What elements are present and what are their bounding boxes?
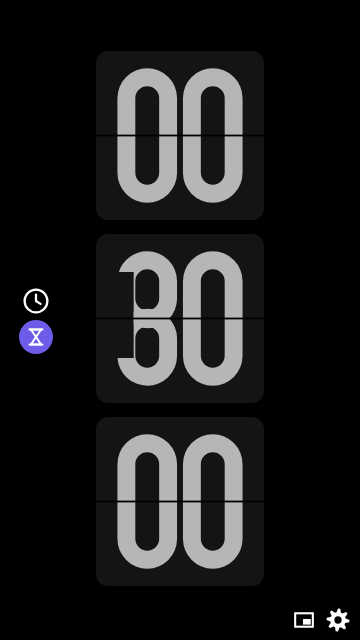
button[interactable]: Seconds 00 — [96, 417, 264, 586]
button[interactable]: Settings — [325, 607, 351, 633]
button[interactable]: Picture in picture — [291, 607, 317, 633]
button[interactable]: Timer — [19, 320, 53, 354]
button[interactable]: Minutes 30 — [96, 234, 264, 403]
button[interactable]: Hours 00 — [96, 51, 264, 220]
button[interactable]: Clock — [21, 286, 51, 316]
